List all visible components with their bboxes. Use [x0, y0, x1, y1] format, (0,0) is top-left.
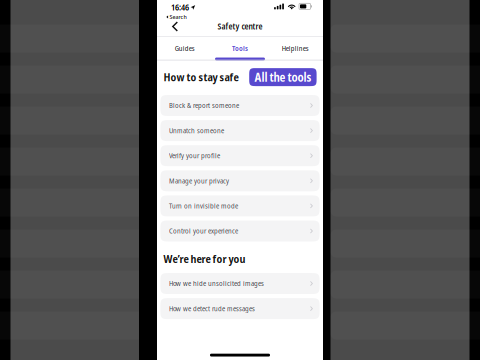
staticText: How to stay safe: [163, 70, 238, 84]
staticText: Guides: [175, 44, 195, 53]
staticText: All the tools: [254, 69, 311, 85]
staticText: How we detect rude messages: [169, 304, 255, 313]
staticText: Control your experience: [169, 226, 238, 236]
staticText: How we hide unsolicited images: [169, 279, 264, 288]
staticText: We’re here for you: [163, 251, 245, 266]
button[interactable]: Tools: [212, 40, 268, 60]
button[interactable]: Control your experience: [160, 220, 320, 241]
button[interactable]: Verify your profile: [160, 145, 320, 166]
button[interactable]: Back: [162, 17, 188, 36]
staticText: Block & report someone: [169, 101, 239, 110]
staticText: Tools: [232, 44, 248, 53]
staticText: Manage your privacy: [169, 176, 229, 185]
staticText: Turn on invisible mode: [169, 201, 238, 210]
button[interactable]: All the tools: [249, 68, 317, 86]
button[interactable]: Guides: [157, 40, 212, 60]
button[interactable]: Manage your privacy: [160, 170, 320, 191]
staticText: Safety centre: [217, 21, 262, 32]
staticText: Search: [169, 13, 186, 21]
staticText: 16:46: [171, 2, 189, 13]
button[interactable]: Helplines: [268, 40, 323, 60]
button[interactable]: Turn on invisible mode: [160, 195, 320, 216]
button[interactable]: How we hide unsolicited images: [160, 273, 320, 294]
staticText: Unmatch someone: [169, 126, 224, 135]
staticText: Helplines: [282, 44, 309, 53]
button[interactable]: Unmatch someone: [160, 120, 320, 141]
button[interactable]: How we detect rude messages: [160, 298, 320, 319]
button[interactable]: Block & report someone: [160, 95, 320, 116]
staticText: Verify your profile: [169, 151, 220, 160]
